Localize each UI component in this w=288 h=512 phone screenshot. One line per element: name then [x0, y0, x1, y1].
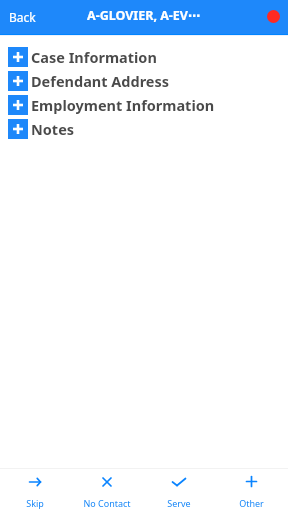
button[interactable]: Skip [0, 469, 72, 512]
button[interactable]: Notes [0, 117, 288, 141]
staticText: No Contact [83, 497, 131, 509]
staticText: Back [9, 9, 36, 25]
button[interactable]: No Contact [72, 469, 144, 512]
staticText: Other [239, 497, 264, 509]
button[interactable]: Employment Information [0, 93, 288, 117]
button[interactable]: Back [0, 3, 46, 31]
button[interactable]: Other [216, 469, 288, 512]
staticText: Notes [31, 119, 75, 139]
button[interactable]: Case Information [0, 45, 288, 69]
button[interactable]: Serve [144, 469, 216, 512]
staticText: Case Information [31, 47, 157, 67]
staticText: A-GLOVIER, A-EV⋯ [87, 7, 201, 24]
button[interactable]: Defendant Address [0, 69, 288, 93]
staticText: Employment Information [31, 95, 215, 115]
staticText: Defendant Address [31, 71, 170, 91]
button[interactable]: Record audio [267, 0, 288, 34]
staticText: Serve [167, 497, 191, 509]
staticText: Skip [26, 497, 44, 509]
